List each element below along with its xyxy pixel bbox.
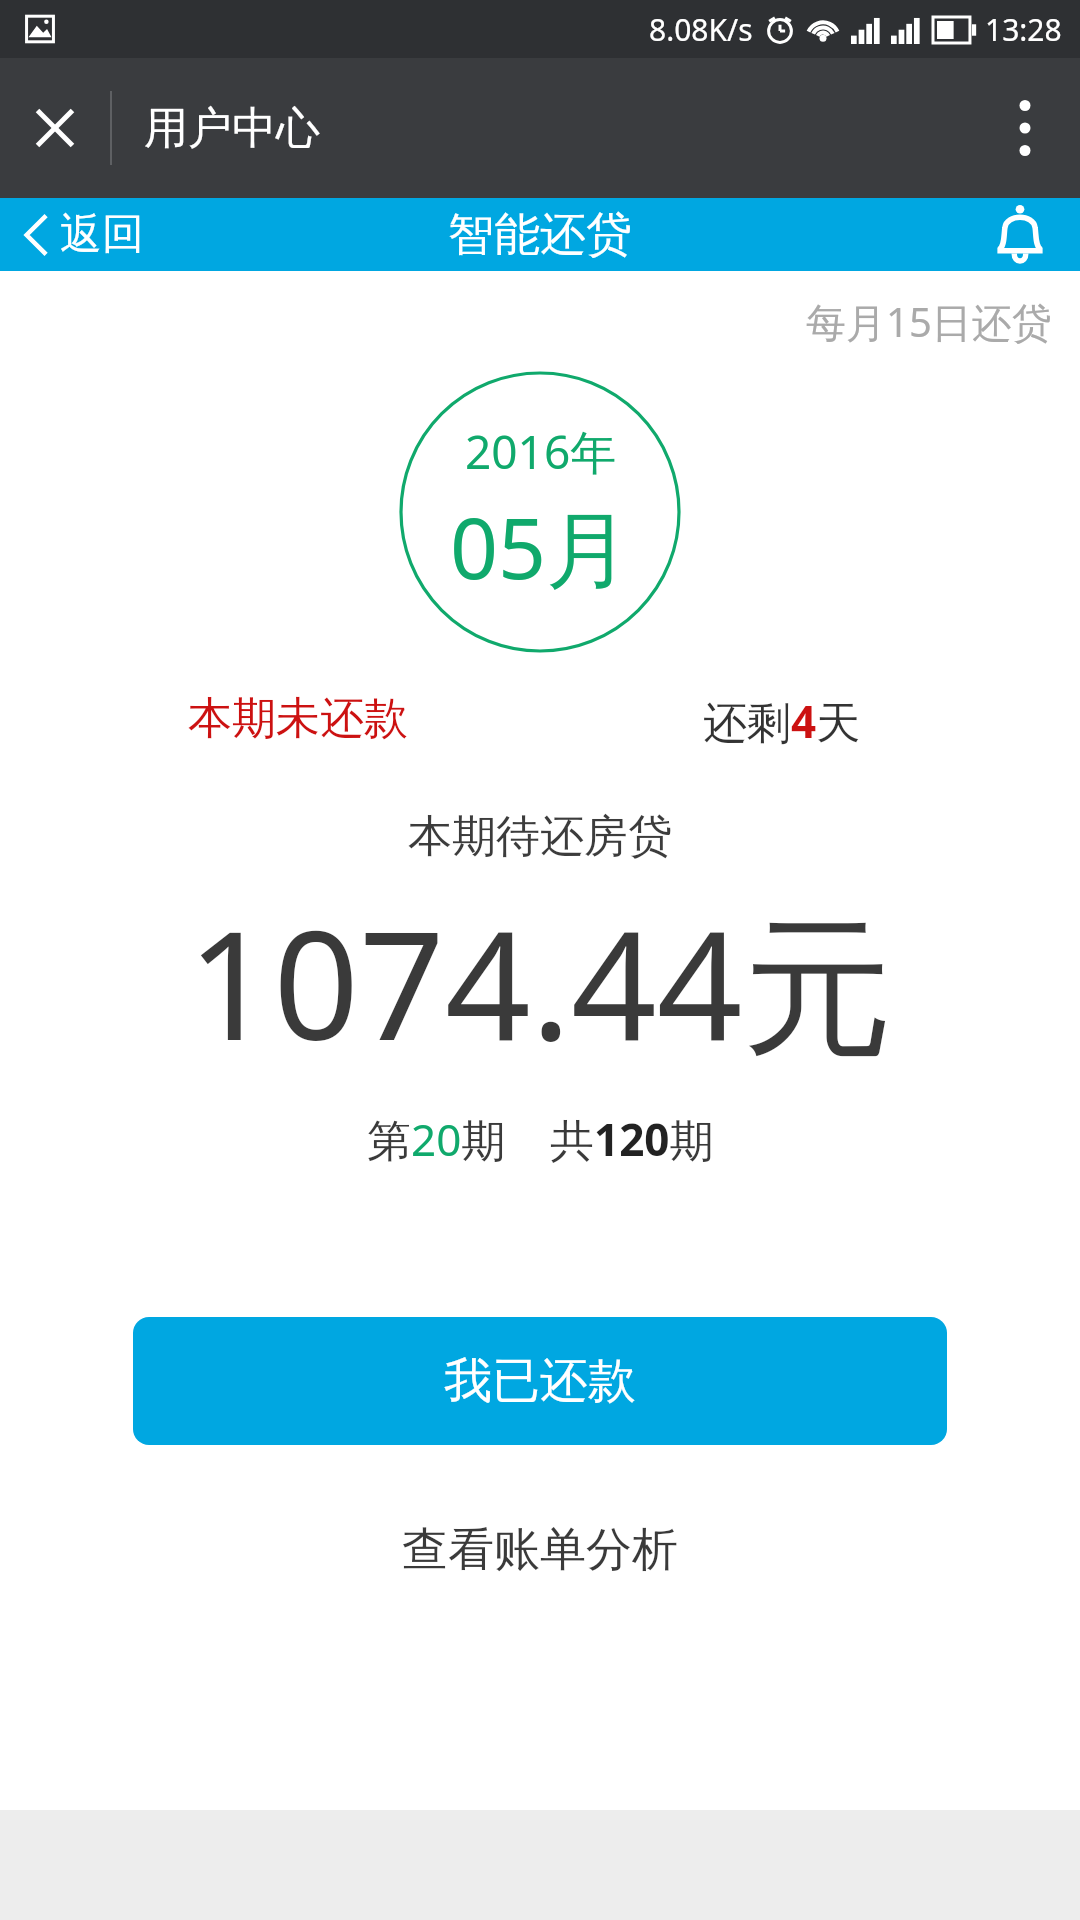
button[interactable]: 查看账单分析 xyxy=(366,1505,714,1595)
button[interactable]: Notifications xyxy=(960,198,1080,271)
staticText: 用户中心 xyxy=(144,101,320,156)
staticText: 查看账单分析 xyxy=(402,1521,678,1579)
staticText: 我已还款 xyxy=(444,1351,636,1411)
staticText: 智能还贷 xyxy=(448,206,632,264)
staticText: 2016年 xyxy=(465,420,617,483)
staticText: 8.08K/s xyxy=(649,9,753,50)
staticText: 还剩4天 xyxy=(703,691,861,751)
staticText: 本期待还房贷 xyxy=(0,809,1080,864)
staticText: 返回 xyxy=(60,208,144,261)
button[interactable]: 我已还款 xyxy=(133,1317,947,1445)
staticText: 共120期 xyxy=(550,1109,714,1169)
staticText: 1074.44元 xyxy=(0,880,1080,1085)
staticText: 05月 xyxy=(450,489,631,604)
button[interactable]: 返回 xyxy=(0,198,164,271)
staticText: 本期未还款 xyxy=(188,691,408,746)
button[interactable]: More options xyxy=(970,58,1080,198)
staticText: 第20期 xyxy=(367,1109,506,1169)
staticText: 每月15日还贷 xyxy=(806,294,1052,349)
button[interactable]: Close xyxy=(0,58,110,198)
staticText: 13:28 xyxy=(985,9,1062,50)
